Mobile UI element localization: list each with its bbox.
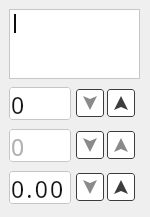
button[interactable]: Increase <box>107 173 135 201</box>
button[interactable]: 0 <box>9 129 71 162</box>
button[interactable]: 0.00 <box>9 171 71 204</box>
button[interactable]: Decrease <box>76 89 104 117</box>
button[interactable]: 0 <box>9 87 71 120</box>
button[interactable]: Decrease <box>76 131 104 159</box>
staticText: 0 <box>11 131 27 162</box>
button[interactable]: Increase <box>107 89 135 117</box>
button[interactable]: Increase <box>107 131 135 159</box>
button[interactable]: Decrease <box>76 173 104 201</box>
button[interactable] <box>9 9 140 79</box>
staticText: 0.00 <box>11 173 66 204</box>
staticText: 0 <box>11 89 27 120</box>
